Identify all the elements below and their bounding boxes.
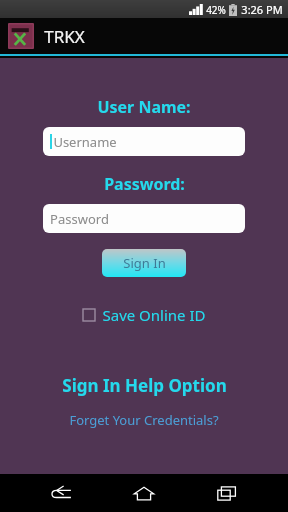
- staticText: Username: [53, 133, 117, 151]
- staticText: Forget Your Credentials?: [69, 411, 219, 429]
- staticText: Password: [50, 210, 109, 228]
- staticText: 42%: [206, 3, 226, 17]
- button[interactable]: Password: [43, 204, 245, 233]
- button[interactable]: Sign In: [102, 249, 186, 277]
- button[interactable]: Username: [43, 127, 245, 156]
- button[interactable]: Recent apps: [205, 474, 249, 512]
- staticText: Password:: [104, 173, 185, 195]
- staticText: Sign In Help Option: [62, 374, 227, 397]
- button[interactable]: Sign In Help Option: [56, 372, 233, 399]
- button[interactable]: Home: [122, 474, 166, 512]
- staticText: Sign In: [123, 254, 166, 272]
- button[interactable]: TRKX app icon: [8, 23, 34, 49]
- button[interactable]: Forget Your Credentials?: [63, 409, 225, 431]
- staticText: User Name:: [97, 96, 191, 118]
- staticText: Save Online ID: [102, 305, 206, 325]
- button[interactable]: Back: [39, 474, 83, 512]
- staticText: 3:26 PM: [241, 2, 283, 17]
- button[interactable]: Save Online ID: [79, 302, 210, 328]
- staticText: TRKX: [44, 25, 85, 48]
